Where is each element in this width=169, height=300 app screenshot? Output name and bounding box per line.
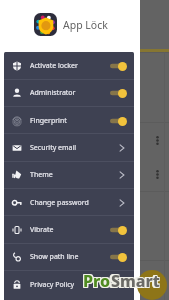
button[interactable]: Theme — [4, 161, 134, 188]
button[interactable]: Privacy Policy — [4, 271, 134, 298]
button[interactable]: Change password — [4, 189, 134, 216]
staticText: ProSmart — [83, 271, 160, 293]
staticText: Theme — [30, 170, 53, 180]
button[interactable]: Administrator — [4, 79, 134, 106]
button[interactable]: More options — [152, 133, 163, 148]
button[interactable]: Activate locker — [4, 52, 134, 79]
staticText: Pro — [83, 270, 111, 292]
staticText: App Löck — [63, 18, 108, 32]
staticText: Smart — [111, 270, 160, 292]
staticText: Security email — [30, 143, 77, 153]
staticText: ProSmart — [83, 269, 160, 291]
staticText: Vibrate — [30, 225, 54, 235]
button[interactable]: Fingerprint — [4, 107, 134, 134]
staticText: ProSmart — [82, 269, 159, 291]
staticText: ProSmart — [84, 269, 161, 291]
staticText: ProSmart — [82, 270, 159, 292]
button[interactable]: Show path line — [4, 243, 134, 270]
button[interactable]: Security email — [4, 134, 134, 161]
staticText: ProSmart — [82, 271, 159, 293]
button[interactable]: More options — [152, 167, 163, 182]
button[interactable]: Vibrate — [4, 216, 134, 243]
staticText: Show path line — [30, 252, 79, 262]
staticText: Fingerprint — [30, 116, 67, 126]
staticText: ProSmart — [84, 271, 161, 293]
staticText: ProSmart — [84, 270, 161, 292]
staticText: Privacy Policy — [30, 280, 75, 290]
staticText: Activate locker — [30, 61, 78, 71]
staticText: Administrator — [30, 88, 76, 98]
staticText: Change password — [30, 198, 89, 208]
